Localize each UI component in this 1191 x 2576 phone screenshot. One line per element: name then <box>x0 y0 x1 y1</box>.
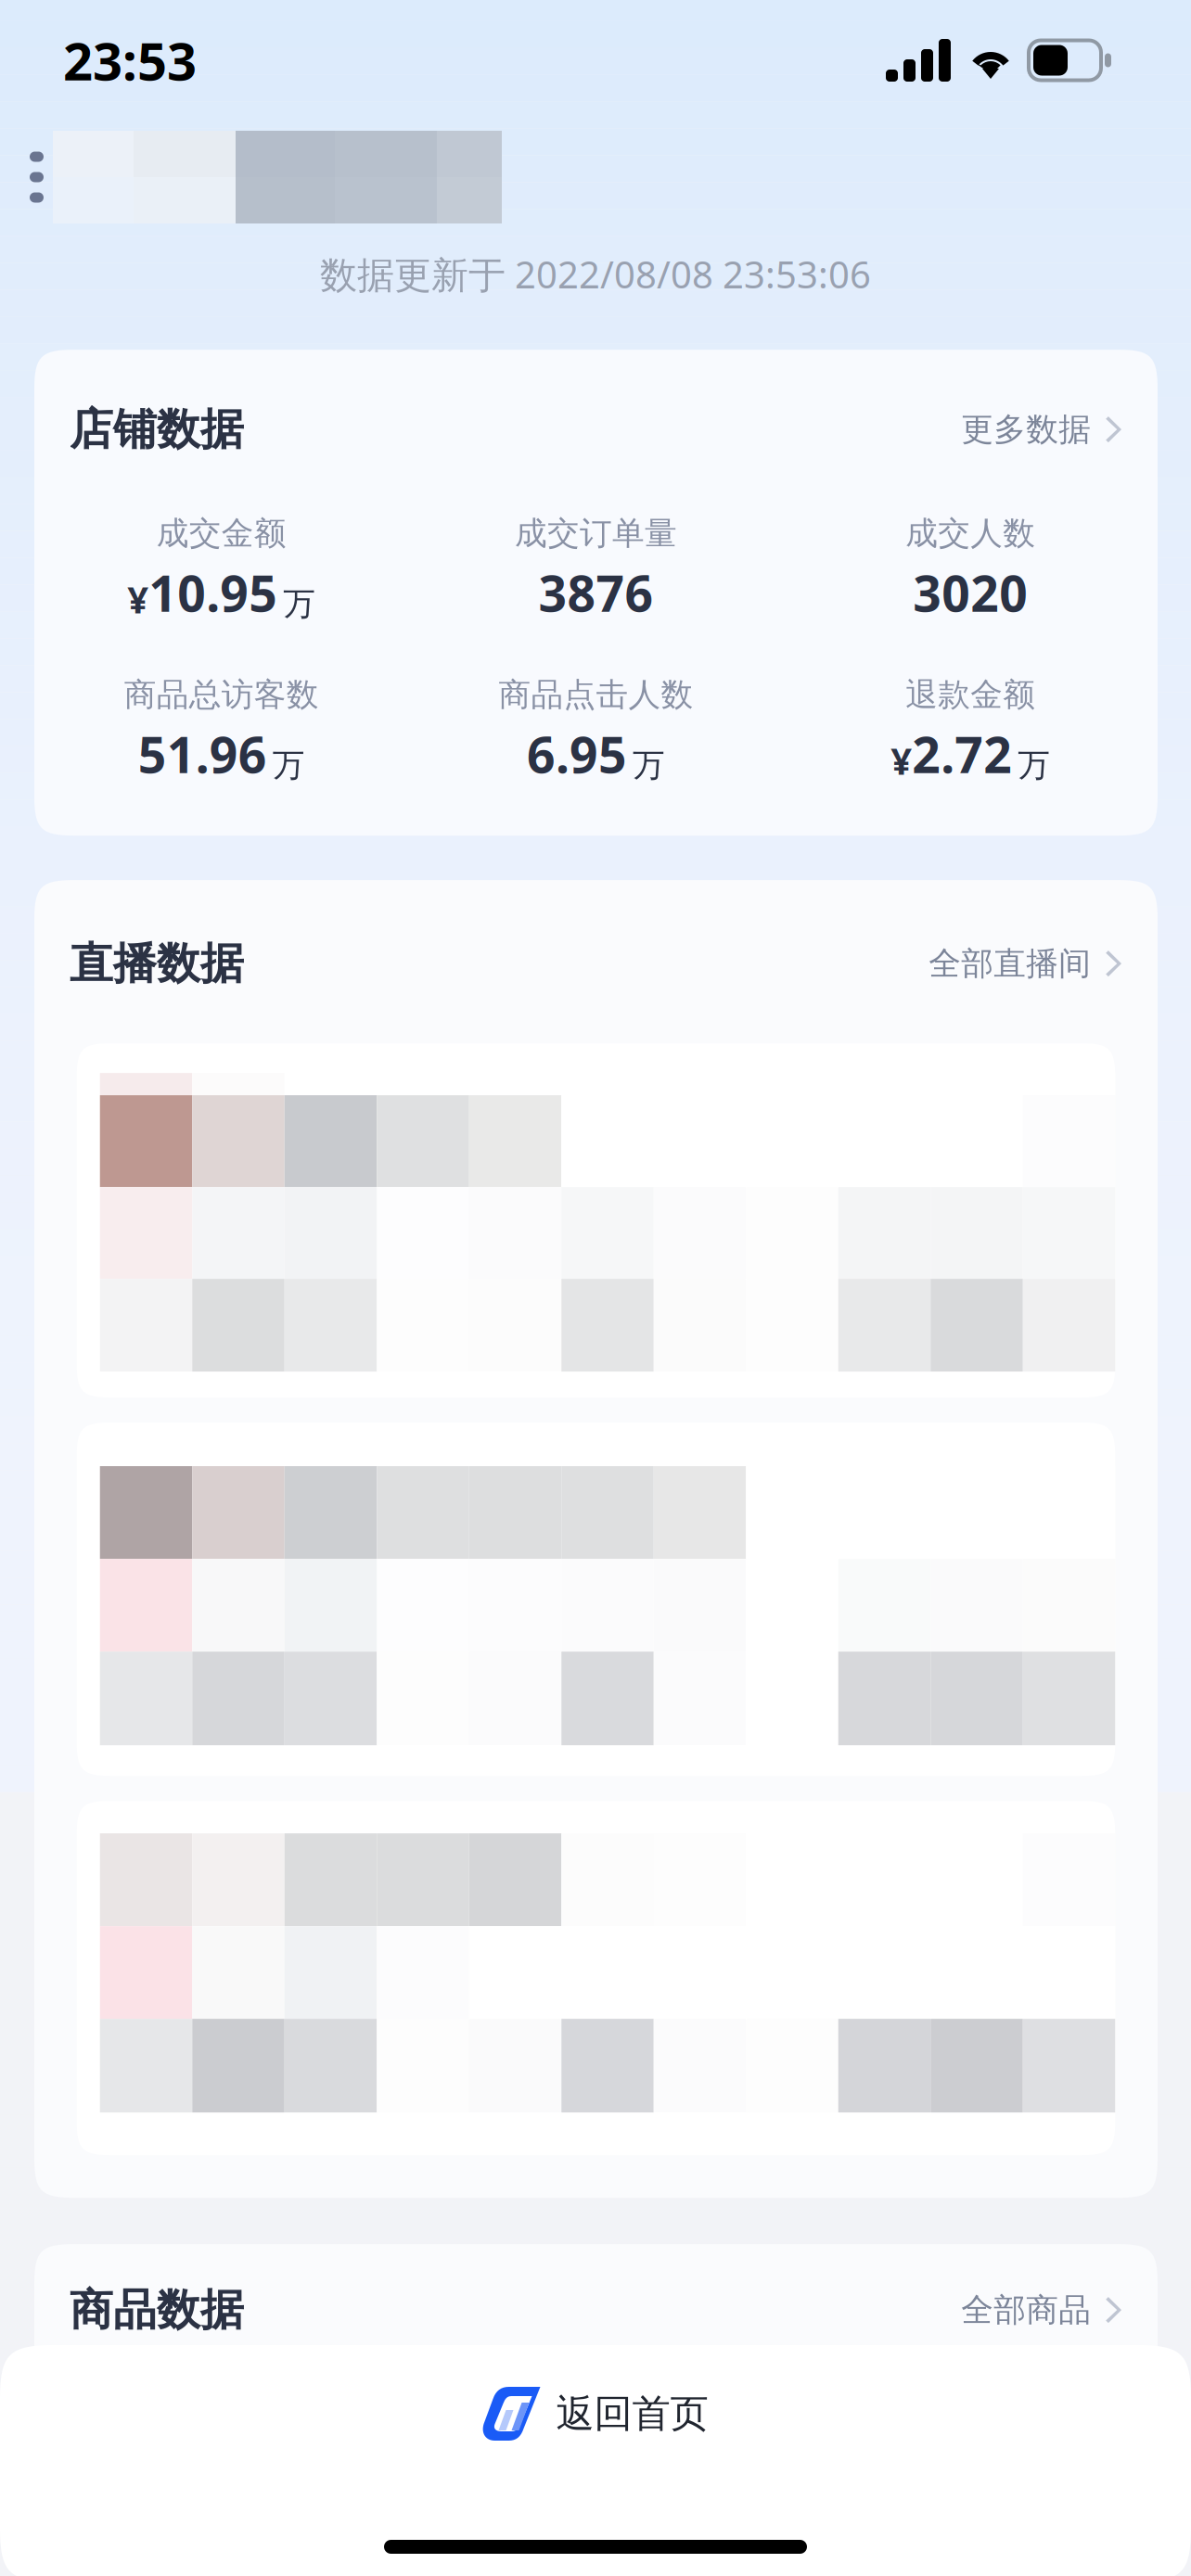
staticText: 10.95 <box>149 560 278 625</box>
staticText: 23:53 <box>63 26 197 95</box>
staticText: 店铺数据 <box>70 403 244 456</box>
button[interactable]: 更多数据 <box>961 404 1121 455</box>
button[interactable]: More options <box>30 131 44 223</box>
staticText: 51.96 <box>138 721 267 787</box>
staticText: 3020 <box>913 560 1028 625</box>
staticText: ¥ <box>891 736 912 785</box>
button[interactable]: 全部直播间 <box>929 938 1121 989</box>
staticText: 成交人数 <box>905 514 1035 553</box>
staticText: 更多数据 <box>961 410 1091 449</box>
staticText: 成交金额 <box>157 514 286 553</box>
staticText: 商品总访客数 <box>124 675 319 714</box>
staticText: 直播数据 <box>70 937 244 990</box>
staticText: 商品数据 <box>70 2283 244 2337</box>
button[interactable]: 返回首页 <box>0 2345 1191 2457</box>
staticText: 返回首页 <box>556 2390 708 2437</box>
button[interactable]: 全部商品 <box>961 2285 1121 2335</box>
button[interactable] <box>77 1801 1115 2155</box>
button[interactable] <box>77 1423 1115 1776</box>
staticText: 万 <box>1018 745 1050 785</box>
staticText: 万 <box>273 745 305 785</box>
staticText: 退款金额 <box>905 675 1035 714</box>
staticText: 商品点击人数 <box>499 675 693 714</box>
staticText: 万 <box>633 745 665 785</box>
staticText: 2.72 <box>912 721 1012 787</box>
staticText: 数据更新于 2022/08/08 23:53:06 <box>320 249 871 299</box>
staticText: 全部商品 <box>961 2290 1091 2330</box>
staticText: ¥ <box>127 574 149 624</box>
staticText: 3876 <box>538 560 653 625</box>
button[interactable] <box>77 1043 1115 1398</box>
staticText: 成交订单量 <box>515 514 677 553</box>
staticText: 全部直播间 <box>929 944 1091 983</box>
staticText: 万 <box>283 584 316 624</box>
staticText: 6.95 <box>527 721 627 787</box>
